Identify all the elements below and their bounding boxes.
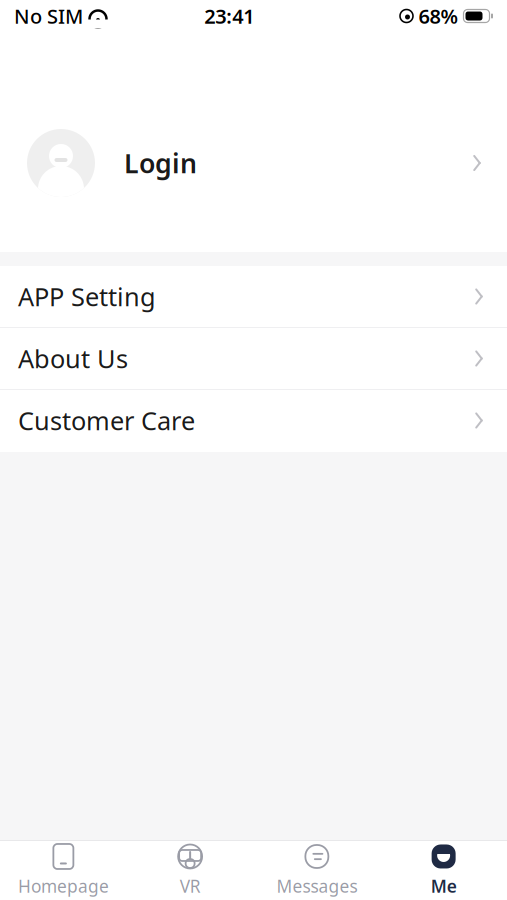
staticText: Me <box>431 874 457 897</box>
button[interactable]: Homepage <box>0 841 127 900</box>
staticText: APP Setting <box>18 280 156 313</box>
button[interactable]: Customer Care <box>0 390 507 452</box>
staticText: VR <box>180 874 201 897</box>
button[interactable]: VR <box>127 841 254 900</box>
staticText: 68% <box>418 3 458 29</box>
staticText: Messages <box>276 874 357 897</box>
button[interactable]: Login <box>0 126 507 200</box>
button[interactable]: Messages <box>253 841 380 900</box>
button[interactable]: APP Setting <box>0 266 507 328</box>
staticText: 23:41 <box>204 3 254 29</box>
staticText: Customer Care <box>18 404 195 437</box>
button[interactable]: About Us <box>0 328 507 390</box>
button[interactable]: Me <box>380 841 507 900</box>
staticText: No SIM <box>14 3 83 29</box>
staticText: Homepage <box>18 874 109 897</box>
staticText: Login <box>124 145 197 181</box>
staticText: About Us <box>18 342 128 375</box>
